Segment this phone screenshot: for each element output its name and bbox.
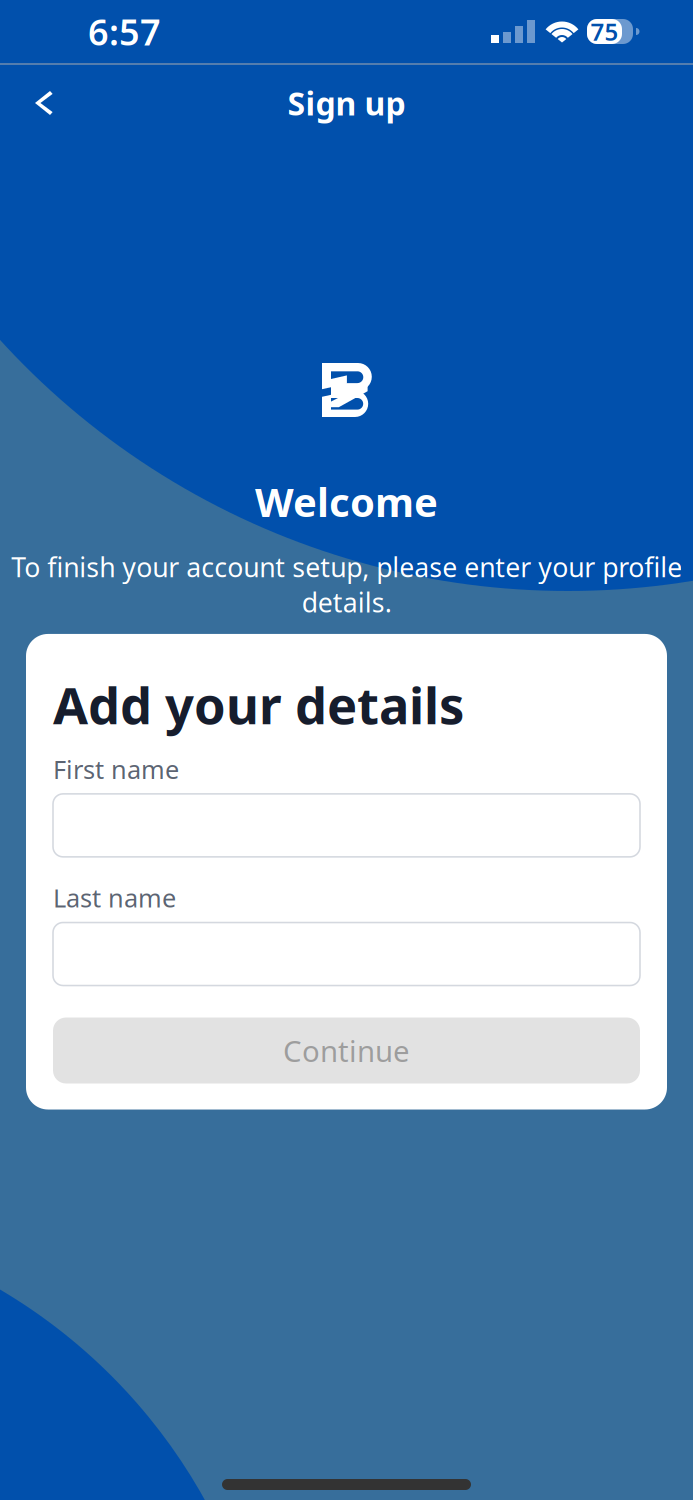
staticText: 6:57 [88, 8, 161, 55]
staticText: Sign up [287, 82, 405, 124]
staticText: To finish your account setup, please ent… [11, 549, 682, 620]
staticText: First name [53, 752, 179, 786]
button[interactable]: Continue [53, 1017, 640, 1083]
button[interactable]: First name [53, 794, 640, 857]
staticText: Continue [283, 1031, 410, 1070]
staticText: 75 [590, 16, 618, 47]
staticText: Add your details [53, 671, 464, 738]
button[interactable]: Last name [53, 922, 640, 985]
staticText: Last name [53, 881, 176, 914]
staticText: Welcome [255, 475, 438, 528]
button[interactable]: Back [0, 67, 76, 139]
